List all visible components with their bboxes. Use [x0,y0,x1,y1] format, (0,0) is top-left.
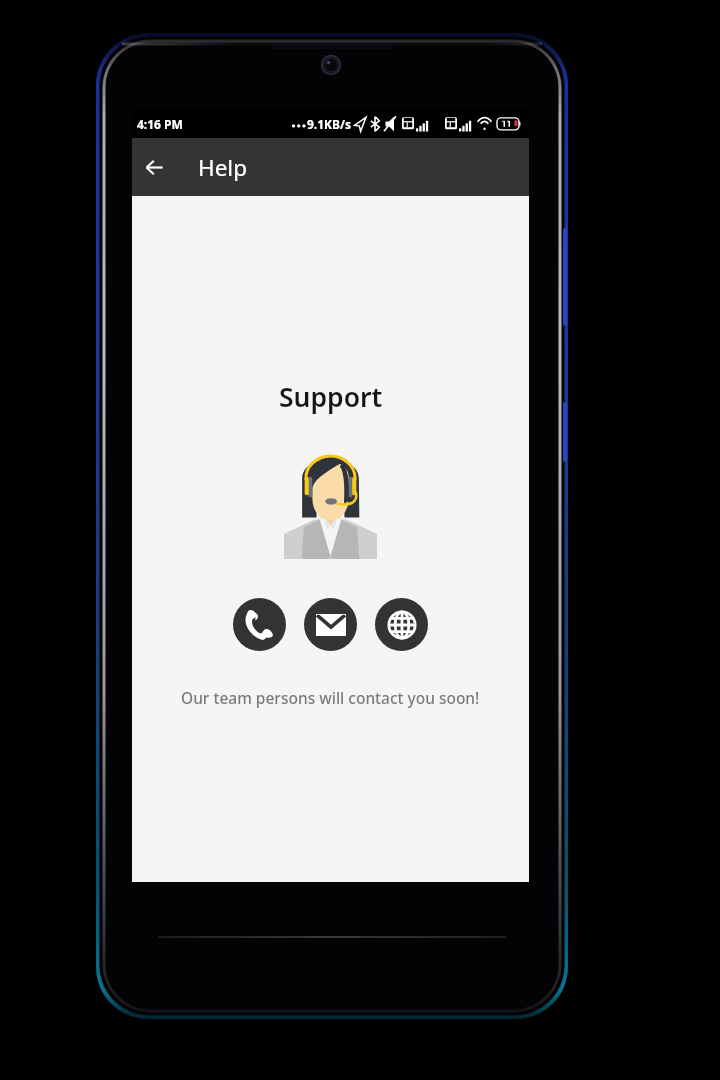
staticText: Our team persons will contact you soon! [181,687,480,708]
staticText: 9.1KB/s [307,116,352,132]
staticText: Help [198,152,248,183]
button[interactable]: Email support [304,598,357,651]
button[interactable]: Visit website [375,598,428,651]
staticText: 4:16 PM [137,116,183,132]
button[interactable]: Call support [233,598,286,651]
button[interactable]: Back [132,145,177,190]
staticText: Support [279,379,383,415]
